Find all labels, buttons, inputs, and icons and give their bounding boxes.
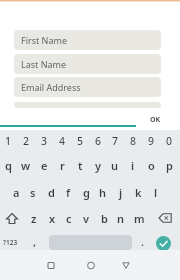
button[interactable]: v bbox=[77, 208, 95, 228]
staticText: 2 bbox=[23, 134, 30, 148]
button[interactable]: i bbox=[124, 155, 142, 175]
button[interactable]: Last Name bbox=[14, 54, 161, 74]
button[interactable]: x bbox=[43, 208, 61, 228]
button[interactable]: d bbox=[42, 182, 60, 202]
button[interactable]: q bbox=[0, 155, 17, 175]
staticText: e bbox=[41, 158, 48, 173]
staticText: m bbox=[134, 211, 145, 226]
button[interactable]: . bbox=[134, 231, 152, 251]
staticText: OK bbox=[150, 115, 161, 125]
staticText: 1 bbox=[5, 134, 12, 148]
staticText: f bbox=[66, 185, 71, 200]
staticText: s bbox=[30, 185, 36, 200]
staticText: 5 bbox=[77, 134, 84, 148]
staticText: h bbox=[99, 185, 107, 200]
staticText: 6 bbox=[95, 134, 102, 148]
staticText: k bbox=[135, 185, 142, 200]
button[interactable]: 9 bbox=[142, 131, 160, 151]
button[interactable]: ?123 bbox=[0, 232, 22, 252]
button[interactable]: z bbox=[25, 208, 43, 228]
button[interactable]: , bbox=[26, 231, 44, 251]
button[interactable]: c bbox=[60, 208, 78, 228]
button[interactable] bbox=[156, 236, 171, 251]
button[interactable]: First Name bbox=[14, 30, 161, 50]
button[interactable]: y bbox=[89, 155, 107, 175]
staticText: , bbox=[33, 234, 37, 249]
button[interactable] bbox=[44, 258, 58, 272]
staticText: u bbox=[111, 158, 119, 173]
staticText: Last Name bbox=[21, 58, 67, 70]
button[interactable]: a bbox=[7, 182, 25, 202]
button[interactable]: p bbox=[160, 155, 178, 175]
button[interactable]: w bbox=[17, 155, 35, 175]
button[interactable]: h bbox=[94, 182, 112, 202]
button[interactable]: Email Address bbox=[14, 77, 161, 97]
staticText: z bbox=[31, 211, 37, 226]
staticText: o bbox=[148, 158, 155, 173]
button[interactable]: 3 bbox=[35, 131, 53, 151]
button[interactable]: OK bbox=[146, 114, 164, 126]
button[interactable]: m bbox=[130, 208, 148, 228]
staticText: p bbox=[166, 158, 173, 173]
button[interactable]: o bbox=[142, 155, 160, 175]
staticText: b bbox=[101, 211, 108, 226]
staticText: l bbox=[154, 185, 158, 200]
staticText: t bbox=[78, 158, 83, 173]
staticText: First Name bbox=[21, 34, 67, 46]
staticText: a bbox=[13, 185, 20, 200]
staticText: r bbox=[60, 158, 65, 173]
button[interactable]: k bbox=[129, 182, 147, 202]
button[interactable]: 5 bbox=[71, 131, 89, 151]
button[interactable]: 8 bbox=[124, 131, 142, 151]
button[interactable]: r bbox=[53, 155, 71, 175]
staticText: ?123 bbox=[3, 238, 18, 247]
staticText: i bbox=[131, 158, 135, 173]
staticText: 9 bbox=[148, 134, 155, 148]
button[interactable]: f bbox=[59, 182, 77, 202]
button[interactable] bbox=[84, 258, 98, 272]
button[interactable]: 1 bbox=[0, 131, 17, 151]
staticText: q bbox=[5, 158, 12, 173]
button[interactable]: s bbox=[24, 182, 42, 202]
button[interactable]: 2 bbox=[17, 131, 35, 151]
staticText: g bbox=[83, 185, 90, 200]
staticText: y bbox=[95, 158, 102, 173]
button[interactable]: g bbox=[77, 182, 95, 202]
staticText: . bbox=[141, 234, 145, 249]
button[interactable] bbox=[119, 258, 133, 272]
button[interactable]: 0 bbox=[160, 131, 178, 151]
button[interactable]: l bbox=[147, 182, 165, 202]
staticText: d bbox=[48, 185, 55, 200]
staticText: 4 bbox=[59, 134, 66, 148]
staticText: 3 bbox=[41, 134, 48, 148]
button[interactable]: b bbox=[95, 208, 113, 228]
button[interactable]: 4 bbox=[53, 131, 71, 151]
staticText: 7 bbox=[112, 134, 119, 148]
button[interactable]: t bbox=[71, 155, 89, 175]
staticText: v bbox=[83, 211, 90, 226]
button[interactable]: 7 bbox=[106, 131, 124, 151]
button[interactable]: j bbox=[112, 182, 130, 202]
button[interactable]: 6 bbox=[89, 131, 107, 151]
staticText: 0 bbox=[166, 134, 173, 148]
button[interactable] bbox=[155, 208, 177, 228]
button[interactable] bbox=[2, 208, 22, 228]
staticText: x bbox=[49, 211, 56, 226]
button[interactable]: u bbox=[106, 155, 124, 175]
staticText: 8 bbox=[130, 134, 137, 148]
staticText: n bbox=[117, 211, 125, 226]
staticText: w bbox=[21, 158, 31, 173]
staticText: Email Address bbox=[21, 81, 81, 93]
button[interactable]: e bbox=[35, 155, 53, 175]
staticText: c bbox=[66, 211, 72, 226]
button[interactable]: n bbox=[112, 208, 130, 228]
staticText: j bbox=[119, 185, 123, 200]
